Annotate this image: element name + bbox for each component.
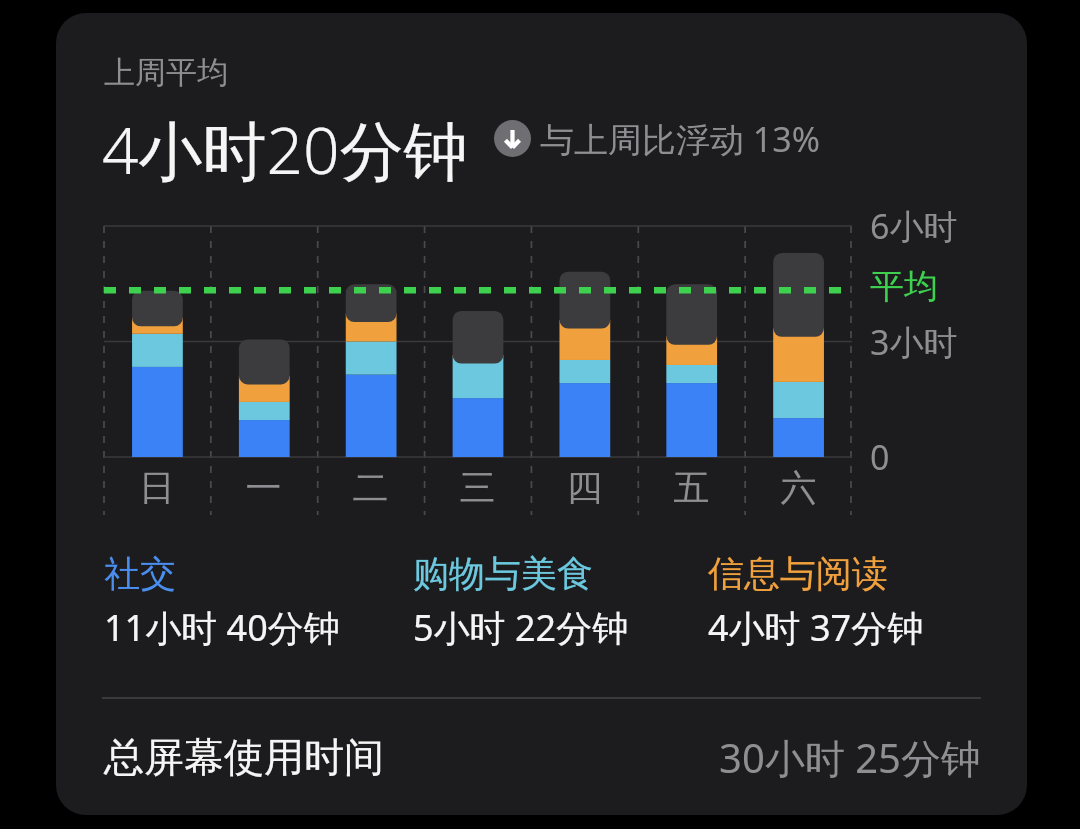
- staticText: 信息与阅读: [708, 551, 888, 596]
- staticText: 四: [531, 465, 638, 510]
- staticText: 4小时20分钟: [102, 106, 468, 193]
- staticText: 0: [870, 434, 1027, 480]
- staticText: 上周平均: [104, 53, 228, 92]
- button[interactable]: 比上周下降: [494, 116, 820, 162]
- staticText: 总屏幕使用时间: [104, 732, 384, 782]
- button[interactable]: 购物与美食: [413, 551, 708, 652]
- staticText: 5小时 22分钟: [413, 603, 629, 652]
- staticText: 二: [317, 465, 424, 510]
- button[interactable]: 信息与阅读: [708, 551, 997, 652]
- staticText: 30小时 25分钟: [719, 730, 981, 785]
- button[interactable]: 上周平均: [56, 13, 1027, 815]
- staticText: 五: [638, 465, 745, 510]
- staticText: 社交: [104, 551, 176, 596]
- button[interactable]: 日: [56, 215, 1027, 515]
- staticText: 11小时 40分钟: [104, 603, 340, 652]
- staticText: 6小时: [870, 203, 1027, 249]
- other: 比上周下降: [494, 120, 531, 157]
- staticText: 六: [745, 465, 852, 510]
- staticText: 一: [210, 465, 317, 510]
- button[interactable]: 社交: [104, 551, 413, 652]
- staticText: 日: [104, 465, 210, 510]
- staticText: 购物与美食: [413, 551, 593, 596]
- staticText: 平均: [870, 265, 1027, 308]
- staticText: 三: [424, 465, 531, 510]
- staticText: 与上周比浮动 13%: [540, 116, 820, 162]
- staticText: 4小时 37分钟: [708, 603, 924, 652]
- staticText: 3小时: [870, 319, 1027, 365]
- button[interactable]: 总屏幕使用时间: [56, 699, 1027, 815]
